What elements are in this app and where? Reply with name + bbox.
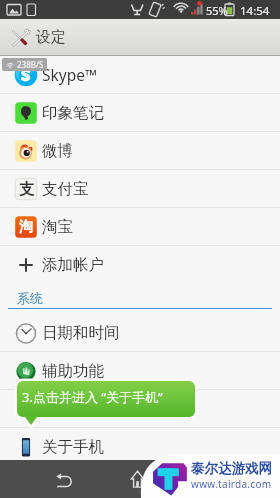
button[interactable]: 3.点击并进入 “关于手机” — [14, 378, 200, 428]
button[interactable]: 印象笔记 — [0, 94, 280, 132]
staticText: 支 — [19, 180, 34, 199]
button[interactable]: Skype™ — [0, 56, 280, 94]
button[interactable]: 关于手机 — [0, 428, 280, 466]
button[interactable]: Home — [122, 464, 152, 494]
staticText: 日期和时间 — [42, 323, 120, 343]
staticText: 印象笔记 — [42, 103, 104, 123]
staticText: Skype™ — [42, 64, 97, 85]
button[interactable]: 日期和时间 — [0, 314, 280, 352]
button[interactable]: 辅助功能 — [0, 352, 280, 390]
button[interactable]: 设定 — [0, 19, 280, 56]
staticText: 55% — [206, 3, 228, 18]
button[interactable]: 微博 — [0, 132, 280, 170]
staticText: 14:54 — [240, 3, 270, 19]
button[interactable]: 添加帐户 — [0, 246, 280, 284]
staticText: 设备信息 — [42, 399, 104, 419]
staticText: 淘 — [19, 218, 33, 236]
staticText: 泰尔达游戏网 — [191, 460, 272, 477]
button[interactable]: 支 — [0, 170, 280, 208]
staticText: 辅助功能 — [42, 361, 104, 381]
button[interactable]: 系统 — [0, 284, 280, 309]
staticText: 设定 — [36, 28, 66, 47]
staticText: 238B/S — [17, 59, 44, 70]
button[interactable]: Back — [49, 465, 79, 495]
staticText: 系统 — [17, 290, 43, 306]
staticText: 淘宝 — [42, 217, 73, 237]
staticText: 3.点击并进入 “关于手机” — [22, 388, 163, 406]
staticText: 支付宝 — [42, 179, 89, 199]
button[interactable]: 淘 — [0, 208, 280, 246]
button[interactable]: Network speed — [5, 59, 44, 70]
staticText: www.tairda.com — [191, 477, 272, 491]
staticText: 微博 — [42, 141, 73, 161]
button[interactable]: 设备信息 — [0, 390, 280, 428]
staticText: 添加帐户 — [42, 255, 104, 275]
staticText: 关于手机 — [42, 437, 104, 457]
